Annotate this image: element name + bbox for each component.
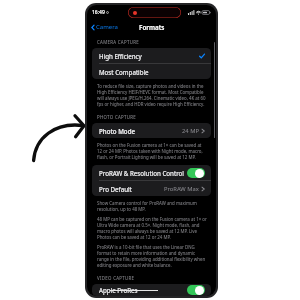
button[interactable]: Toggle on	[187, 285, 205, 295]
staticText: VIDEO CAPTURE	[97, 275, 135, 281]
staticText: ProRAW Max	[164, 185, 199, 193]
staticText: Camera	[96, 23, 118, 31]
staticText: Photo Mode	[99, 127, 136, 135]
staticText: Formats	[139, 23, 165, 32]
staticText: Photos on the Fusion camera at 1× can be…	[97, 142, 207, 160]
staticText: Most Compatible	[99, 68, 149, 76]
button[interactable]: Toggle on	[187, 168, 205, 178]
button[interactable]: Pro Default	[92, 181, 211, 196]
button[interactable]: Photo Mode	[92, 123, 211, 138]
staticText: To reduce file size, capture photos and …	[97, 83, 207, 107]
staticText: CAMERA CAPTURE	[97, 39, 139, 45]
staticText: Pro Default	[99, 185, 132, 193]
staticText: ProRAW & Resolution Control	[99, 169, 184, 177]
button[interactable]: High Efficiency	[92, 48, 211, 64]
button[interactable]: ProRAW & Resolution Control	[92, 165, 211, 181]
button[interactable]: Camera	[90, 22, 119, 32]
staticText: ProRAW is a 10-bit file that uses the Li…	[97, 244, 207, 268]
staticText: 16:49	[92, 9, 105, 16]
button[interactable]: Apple ProRes	[92, 284, 211, 296]
button[interactable]: Most Compatible	[92, 64, 211, 79]
staticText: Show Camera control for ProRAW and maxim…	[97, 200, 207, 212]
staticText: 24 MP	[182, 127, 199, 135]
staticText: PHOTO CAPTURE	[97, 114, 137, 120]
staticText: Apple ProRes	[99, 286, 138, 294]
staticText: 48 MP can be captured on the Fusion came…	[97, 216, 207, 240]
staticText: High Efficiency	[99, 52, 142, 60]
